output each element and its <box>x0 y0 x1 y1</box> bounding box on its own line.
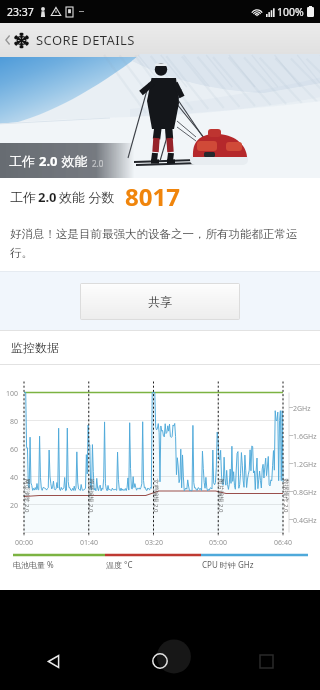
staticText: 1.6GHz <box>293 432 317 442</box>
staticText: 03:20 <box>145 538 163 548</box>
staticText: 60 <box>10 445 19 455</box>
staticText: 40 <box>10 473 19 483</box>
staticText: 00:00 <box>15 538 33 548</box>
staticText: 20 <box>10 501 19 511</box>
staticText: 06:40 <box>274 538 292 548</box>
staticText: 2GHz <box>293 404 311 414</box>
staticText: 100 <box>6 389 19 399</box>
staticText: 2.0 <box>92 158 104 169</box>
staticText: 01:40 <box>80 538 98 548</box>
staticText: SCORE DETAILS <box>36 31 135 49</box>
staticText: 温度 °C <box>106 559 133 570</box>
button[interactable]: Recent apps <box>213 632 320 690</box>
staticText: 图片编辑 2.0 <box>216 478 224 513</box>
button[interactable]: Back <box>0 23 14 57</box>
staticText: 视频编辑 2.0 <box>86 478 94 513</box>
button[interactable]: Back <box>0 632 106 690</box>
staticText: 100% <box>277 5 304 19</box>
staticText: 0.8GHz <box>293 488 317 498</box>
button[interactable]: 共享 <box>81 284 239 319</box>
staticText: 工作 <box>10 189 36 205</box>
staticText: 文档编辑 2.0 <box>151 478 159 513</box>
staticText: CPU 时钟 GHz <box>202 559 254 570</box>
staticText: 电池电量 % <box>13 559 54 570</box>
staticText: 效能 分数 <box>59 188 115 206</box>
staticText: 监控数据 <box>11 340 59 355</box>
button[interactable]: Home <box>106 632 213 690</box>
staticText: 1.2GHz <box>293 460 317 470</box>
staticText: 8017 <box>125 180 180 213</box>
staticText: 网页浏览 2.0 <box>22 478 30 513</box>
staticText: 好消息！这是目前最强大的设备之一，所有功能都正常运行。 <box>10 227 310 261</box>
staticText: 共享 <box>148 294 172 309</box>
staticText: 工作 <box>9 152 39 170</box>
staticText: 80 <box>10 417 19 427</box>
staticText: 2.0 <box>38 188 57 206</box>
staticText: 2.0 <box>39 152 58 170</box>
staticText: 效能 <box>58 152 88 170</box>
staticText: 05:00 <box>209 538 227 548</box>
staticText: 数据操作 2.0 <box>281 478 289 513</box>
staticText: 0.4GHz <box>293 516 317 526</box>
staticText: 23:37 <box>7 5 34 19</box>
